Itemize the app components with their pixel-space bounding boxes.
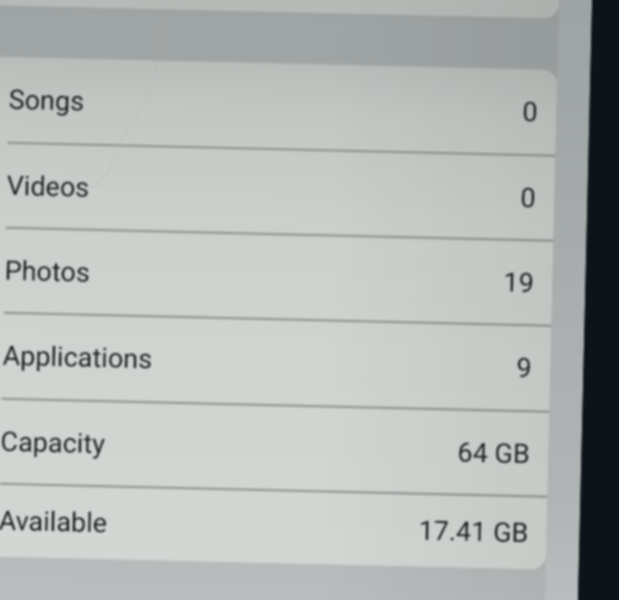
button[interactable]: Capacity	[0, 400, 549, 496]
staticText: Videos	[6, 170, 90, 204]
button[interactable]: Videos	[6, 144, 555, 240]
button[interactable]: Applications	[2, 314, 551, 411]
staticText: Applications	[2, 340, 153, 375]
staticText: 17.41 GB	[418, 515, 529, 549]
staticText: Capacity	[0, 426, 106, 460]
staticText: 0	[520, 182, 537, 214]
staticText: 0	[522, 96, 539, 128]
staticText: Available	[0, 505, 108, 539]
button[interactable]: Songs	[8, 57, 557, 155]
staticText: Photos	[4, 255, 91, 289]
button[interactable]: Photos	[4, 229, 553, 325]
staticText: 9	[516, 352, 533, 384]
button[interactable]: Available	[0, 485, 547, 570]
staticText: Songs	[8, 84, 85, 118]
staticText: 19	[503, 267, 535, 299]
staticText: 64 GB	[457, 436, 531, 470]
